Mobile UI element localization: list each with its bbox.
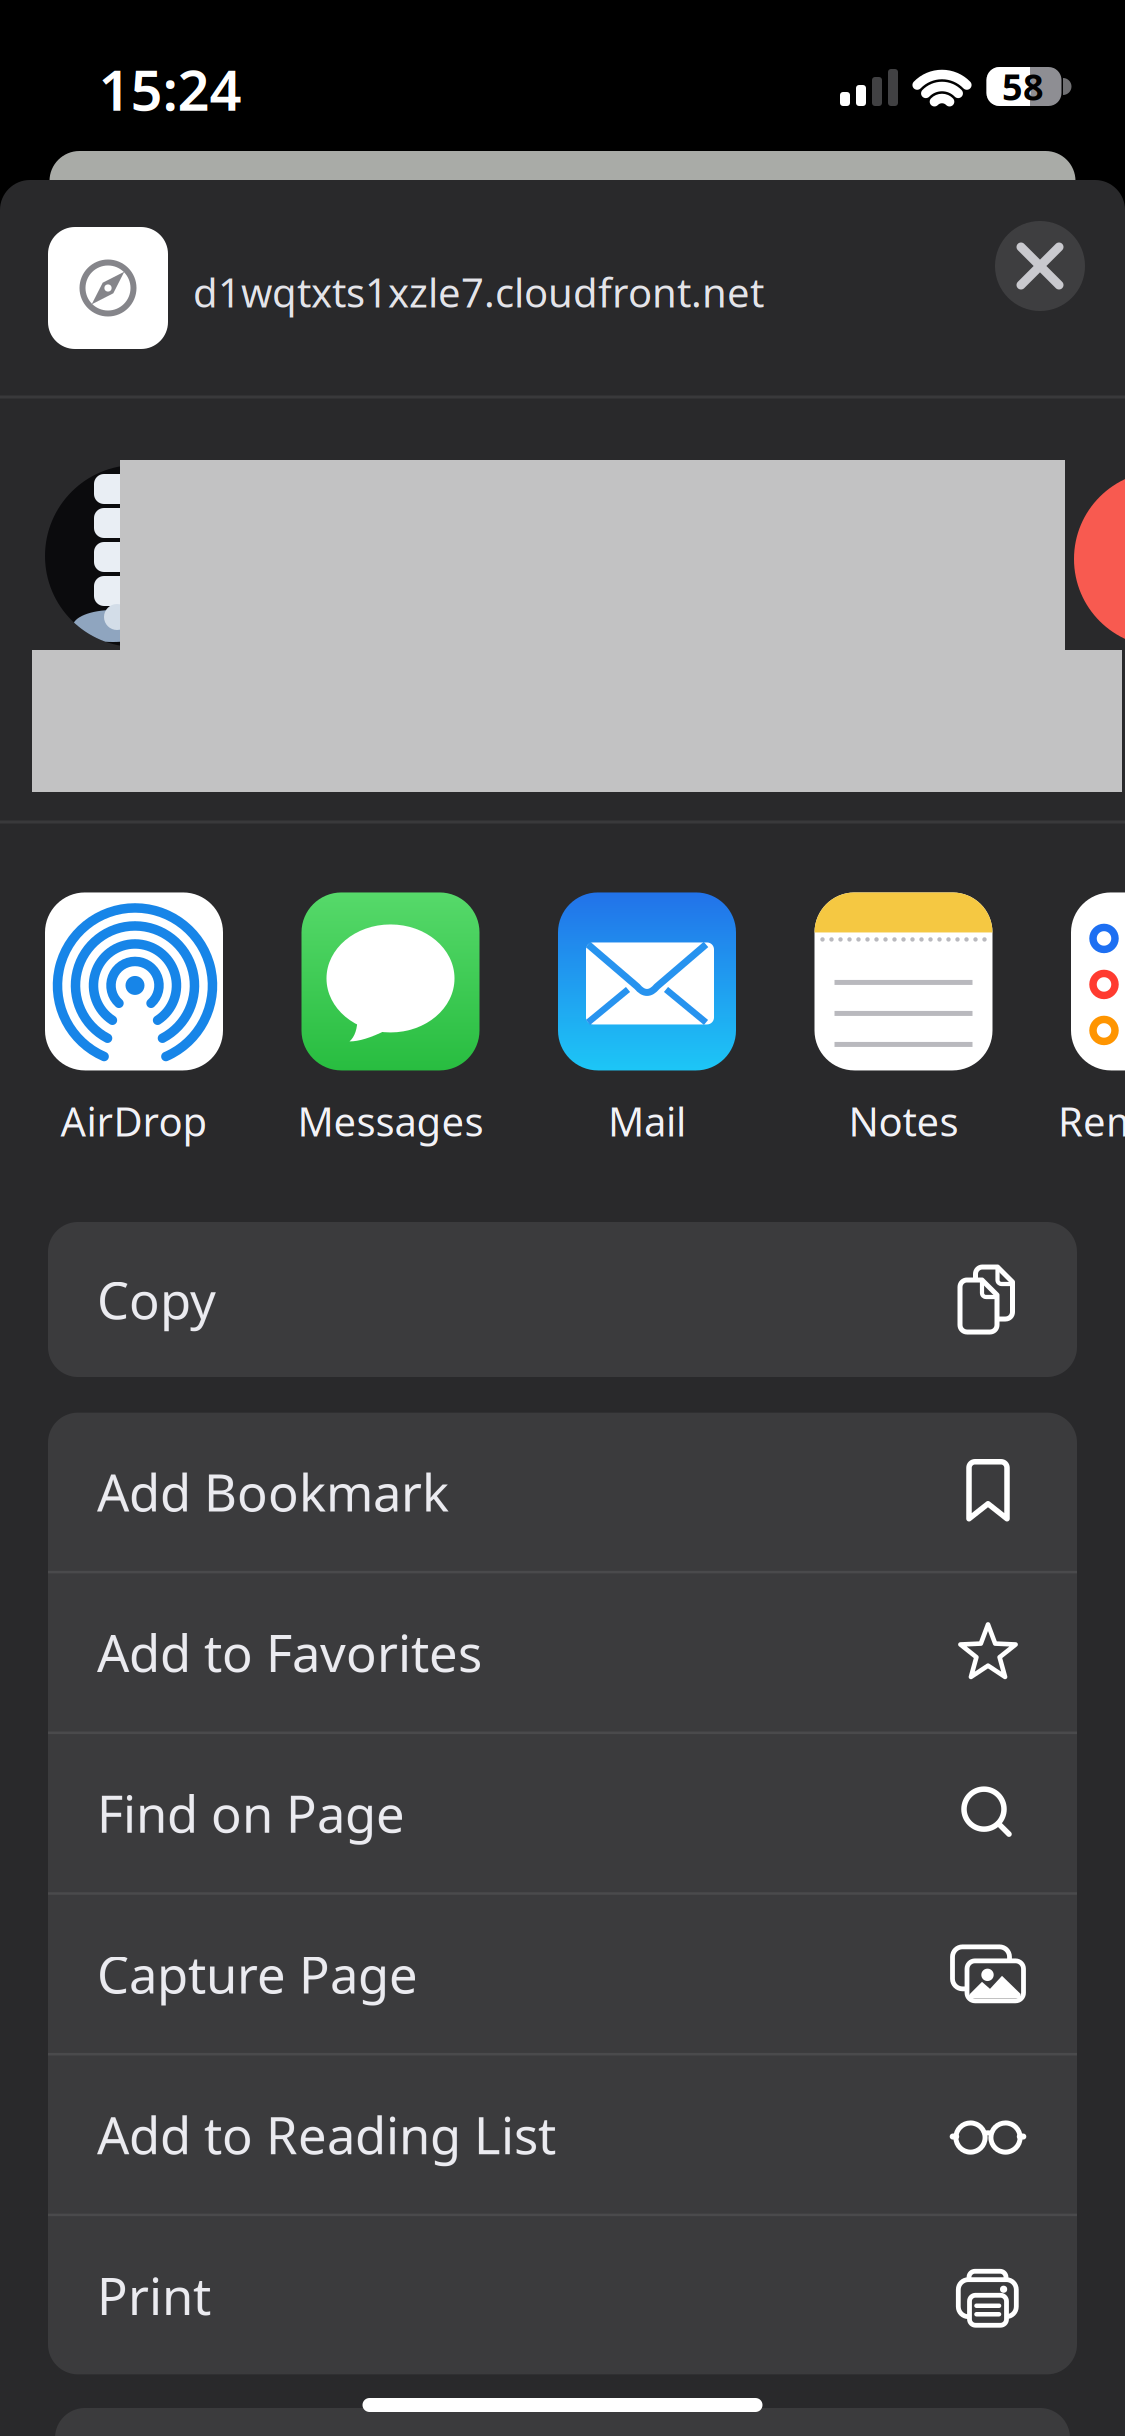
staticText: Notes bbox=[848, 1094, 958, 1147]
button[interactable]: Close bbox=[995, 221, 1085, 311]
staticText: AirDrop bbox=[60, 1094, 207, 1147]
staticText: Add to Favorites bbox=[97, 1619, 482, 1686]
staticText: Reminders bbox=[1058, 1094, 1125, 1147]
staticText: Messages bbox=[297, 1094, 483, 1147]
button[interactable]: Capture Page bbox=[48, 1895, 1077, 2053]
button[interactable]: Find on Page bbox=[48, 1734, 1077, 1892]
staticText: Find on Page bbox=[97, 1779, 405, 1847]
button[interactable]: Reminders bbox=[1035, 895, 1125, 1145]
button[interactable]: Add Bookmark bbox=[48, 1413, 1077, 1571]
button[interactable]: Add to Favorites bbox=[48, 1573, 1077, 1732]
button[interactable]: Messages bbox=[265, 895, 515, 1145]
button[interactable]: Add to Reading List bbox=[48, 2055, 1077, 2214]
button[interactable]: AirDrop bbox=[9, 895, 259, 1145]
staticText: Print bbox=[97, 2262, 211, 2329]
staticText: Capture Page bbox=[97, 1940, 418, 2007]
button[interactable]: Print bbox=[48, 2216, 1077, 2374]
staticText: Add to Reading List bbox=[97, 2101, 556, 2168]
button[interactable]: Notes bbox=[778, 895, 1028, 1145]
staticText: d1wqtxts1xzle7.cloudfront.net bbox=[193, 265, 764, 318]
button[interactable]: Copy bbox=[48, 1222, 1077, 1377]
staticText: Copy bbox=[97, 1266, 216, 1333]
staticText: 58 bbox=[1002, 63, 1044, 110]
staticText: 15:24 bbox=[98, 52, 241, 126]
staticText: Mail bbox=[608, 1094, 686, 1147]
staticText: Add Bookmark bbox=[97, 1458, 449, 1525]
button[interactable]: Mail bbox=[522, 895, 772, 1145]
